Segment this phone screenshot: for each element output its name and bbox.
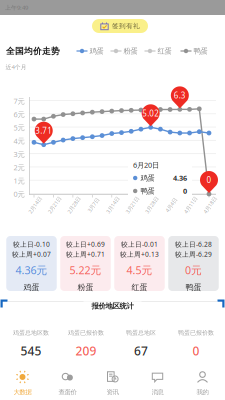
staticText: 较上日-0.10 xyxy=(13,240,50,249)
staticText: 消息 xyxy=(151,388,163,396)
staticText: 较上周+0.07 xyxy=(12,250,51,259)
staticText: 5.22元 xyxy=(69,263,101,277)
staticText: 209 xyxy=(75,343,96,359)
staticText: 红蛋 xyxy=(157,46,171,56)
staticText: 3.71 xyxy=(35,125,52,136)
staticText: 鸡蛋 xyxy=(140,173,154,183)
button[interactable]: 较上日+0.69 xyxy=(60,236,111,291)
staticText: 2元 xyxy=(13,162,24,172)
staticText: 6元 xyxy=(13,109,24,119)
staticText: 2月28日 xyxy=(64,201,83,209)
staticText: 鸭蛋已报价数 xyxy=(178,329,214,337)
button[interactable]: 我的 xyxy=(180,366,225,400)
staticText: 0元 xyxy=(13,189,24,199)
staticText: 3月28日 xyxy=(142,201,161,209)
staticText: 较上日+0.69 xyxy=(66,240,105,249)
staticText: 3月21日 xyxy=(123,201,142,209)
staticText: 0元 xyxy=(185,263,202,277)
staticText: 5.02 xyxy=(142,108,159,119)
staticText: 545 xyxy=(20,343,41,359)
button[interactable]: 查蛋价 xyxy=(45,366,90,400)
staticText: 4.36元 xyxy=(15,263,47,277)
staticText: 近4个月 xyxy=(5,63,26,71)
staticText: 较上周+0.71 xyxy=(66,250,105,259)
staticText: 0 xyxy=(206,175,211,185)
staticText: 鸭蛋 xyxy=(193,46,207,56)
staticText: 鸭蛋 xyxy=(185,282,201,292)
staticText: 上午9:49 xyxy=(5,3,28,12)
staticText: 1元 xyxy=(13,176,24,186)
staticText: 4.5元 xyxy=(126,263,152,277)
button[interactable]: 大数据 xyxy=(0,366,45,400)
staticText: 鸭蛋总地区 xyxy=(126,329,156,337)
button[interactable]: 消息 xyxy=(135,366,180,400)
button[interactable]: 资讯 xyxy=(90,366,135,400)
staticText: 全国均价走势 xyxy=(6,45,60,56)
button[interactable]: 较上日-6.28 xyxy=(168,236,219,291)
staticText: 5元 xyxy=(13,123,24,133)
staticText: 2月14日 xyxy=(25,201,44,209)
staticText: 4.36 xyxy=(173,173,187,183)
staticText: 67 xyxy=(134,343,148,359)
staticText: 4元 xyxy=(13,136,24,146)
staticText: 鸡蛋已报价数 xyxy=(68,329,104,337)
staticText: 较上日-0.01 xyxy=(121,240,158,249)
staticText: 7元 xyxy=(13,96,24,106)
staticText: 粉蛋 xyxy=(77,282,93,292)
staticText: 6月20日 xyxy=(133,160,159,170)
staticText: 0 xyxy=(192,343,199,359)
staticText: 签到有礼 xyxy=(112,22,140,30)
staticText: 0 xyxy=(183,186,187,196)
staticText: 鸡蛋 xyxy=(89,46,103,56)
staticText: 鸭蛋 xyxy=(140,186,154,196)
staticText: 大数据 xyxy=(13,388,31,396)
staticText: 4月11日 xyxy=(181,201,200,209)
staticText: 红蛋 xyxy=(131,282,147,292)
staticText: 报价地区统计 xyxy=(91,301,133,311)
staticText: 资讯 xyxy=(106,388,118,396)
staticText: 较上日-6.28 xyxy=(175,240,212,249)
staticText: 查蛋价 xyxy=(58,388,76,396)
button[interactable]: 较上日-0.01 xyxy=(114,236,165,291)
staticText: 较上周-6.29 xyxy=(175,250,212,259)
staticText: 较上周+0.13 xyxy=(120,250,159,259)
staticText: 粉蛋 xyxy=(123,46,137,56)
staticText: 4月18日 xyxy=(200,201,219,209)
staticText: 3月14日 xyxy=(103,201,122,209)
staticText: 鸡蛋 xyxy=(23,282,39,292)
staticText: 4月4日 xyxy=(163,201,179,209)
staticText: 6.3 xyxy=(174,90,186,101)
staticText: 3元 xyxy=(13,149,24,159)
staticText: 2月21日 xyxy=(45,201,64,209)
staticText: 我的 xyxy=(196,388,208,396)
button[interactable]: 签到有礼 xyxy=(92,19,148,33)
staticText: 3月7日 xyxy=(85,201,101,209)
staticText: 鸡蛋总地区数 xyxy=(13,329,49,337)
button[interactable]: 较上日-0.10 xyxy=(6,236,57,291)
